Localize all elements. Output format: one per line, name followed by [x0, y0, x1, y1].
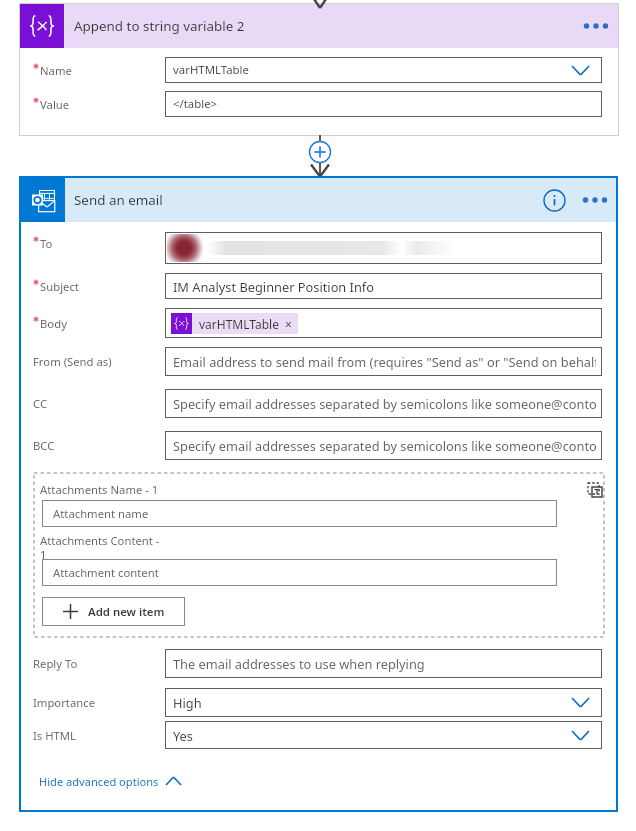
staticText: Append to string variable 2: [74, 17, 245, 35]
staticText: Importance: [33, 695, 96, 710]
staticText: Attachment content: [53, 565, 159, 580]
staticText: Specify email addresses separated by sem…: [173, 437, 596, 454]
staticText: Send an email: [74, 191, 163, 209]
staticText: Reply To: [33, 656, 78, 671]
staticText: Body: [40, 316, 67, 331]
staticText: Is HTML: [33, 728, 76, 743]
staticText: Add new item: [88, 604, 165, 620]
staticText: High: [173, 694, 202, 711]
button[interactable]: Attachment name: [42, 500, 557, 527]
staticText: Email address to send mail from (require…: [173, 353, 596, 370]
staticText: Value: [40, 97, 70, 112]
staticText: Name: [40, 63, 72, 78]
button[interactable]: Switch to text mode: [586, 481, 604, 499]
staticText: IM Analyst Beginner Position Info: [173, 278, 375, 295]
staticText: CC: [33, 396, 48, 411]
button[interactable]: IM Analyst Beginner Position Info: [165, 273, 602, 299]
button[interactable]: More commands: [574, 178, 616, 222]
staticText: The email addresses to use when replying: [173, 655, 425, 672]
button[interactable]: High: [165, 688, 602, 717]
button[interactable]: varHTMLTable: [165, 308, 602, 338]
staticText: Yes: [173, 727, 193, 744]
button[interactable]: Email address to send mail from (require…: [165, 347, 602, 376]
button[interactable]: [165, 232, 602, 264]
staticText: ×: [285, 316, 292, 332]
button[interactable]: Attachment content: [42, 559, 557, 586]
staticText: From (Send as): [33, 354, 112, 369]
staticText: To: [40, 236, 53, 251]
staticText: Attachment name: [53, 506, 149, 521]
staticText: varHTMLTable: [173, 62, 249, 78]
button[interactable]: varHTMLTable: [165, 57, 602, 83]
staticText: Subject: [40, 279, 79, 294]
button[interactable]: Send an email: [21, 178, 616, 222]
button[interactable]: </table>: [165, 91, 602, 117]
staticText: 1: [40, 547, 47, 562]
button[interactable]: Add new item: [42, 597, 185, 626]
staticText: BCC: [33, 438, 55, 453]
button[interactable]: Yes: [165, 721, 602, 749]
button[interactable]: Information: [534, 178, 574, 222]
staticText: Attachments Name - 1: [40, 482, 159, 497]
staticText: varHTMLTable: [199, 316, 279, 332]
staticText: </table>: [173, 96, 218, 112]
button[interactable]: Specify email addresses separated by sem…: [165, 389, 602, 418]
staticText: Hide advanced options: [39, 774, 159, 789]
button[interactable]: Append to string variable 2: [20, 4, 618, 48]
staticText: Specify email addresses separated by sem…: [173, 395, 596, 412]
button[interactable]: Specify email addresses separated by sem…: [165, 431, 602, 460]
button[interactable]: The email addresses to use when replying: [165, 649, 602, 678]
button[interactable]: More commands: [574, 4, 618, 48]
staticText: Attachments Content -: [40, 533, 160, 548]
button[interactable]: Hide advanced options: [39, 770, 181, 792]
